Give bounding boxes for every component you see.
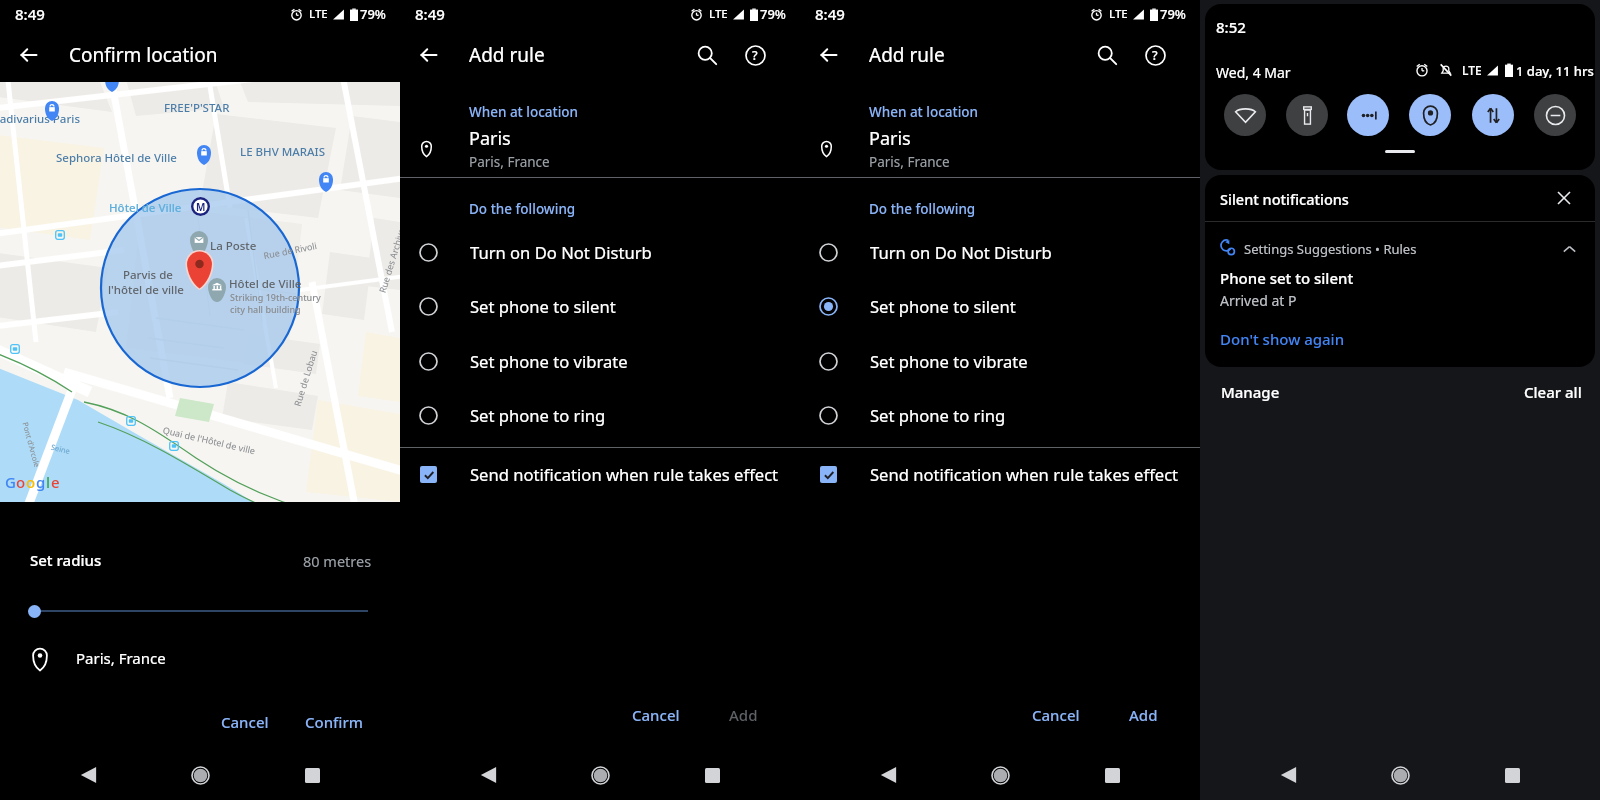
staticText: Confirm location: [69, 42, 218, 68]
staticText: Add rule: [869, 42, 945, 68]
staticText: ?: [1152, 47, 1158, 64]
button[interactable]: Recents: [290, 753, 334, 797]
button[interactable]: Search: [684, 32, 730, 78]
button[interactable]: Set phone to vibrate: [400, 334, 800, 388]
staticText: Pont d'Arcole: [21, 421, 42, 469]
button[interactable]: Cancel: [1022, 698, 1090, 732]
staticText: Clear all: [1524, 382, 1582, 402]
staticText: o: [16, 472, 26, 492]
button[interactable]: Back: [66, 753, 110, 797]
button[interactable]: Clear all: [1520, 379, 1586, 405]
button[interactable]: Mobile data: [1472, 94, 1514, 136]
button[interactable]: Set phone to silent: [800, 279, 1200, 333]
button[interactable]: Back: [866, 753, 910, 797]
button[interactable]: Back: [806, 32, 852, 78]
staticText: 8:52: [1216, 17, 1246, 37]
staticText: When at location: [869, 103, 979, 121]
staticText: Manage: [1221, 382, 1280, 402]
staticText: Add: [729, 705, 758, 725]
button[interactable]: Location: [1409, 94, 1451, 136]
button[interactable]: Do Not Disturb: [1534, 94, 1576, 136]
button[interactable]: Cancel: [211, 705, 279, 739]
button[interactable]: Send notification when rule takes effect: [400, 448, 800, 500]
staticText: Add rule: [469, 42, 545, 68]
staticText: Add: [1129, 705, 1158, 725]
button[interactable]: Add: [1119, 698, 1168, 732]
button[interactable]: Recents: [690, 753, 734, 797]
staticText: o: [26, 472, 36, 492]
button[interactable]: Do Not Disturb options: [1347, 94, 1389, 136]
button[interactable]: Help: [1132, 32, 1178, 78]
button[interactable]: Help: [732, 32, 778, 78]
staticText: Silent notifications: [1220, 189, 1349, 209]
staticText: Phone set to silent: [1220, 268, 1354, 288]
staticText: radivarius Paris: [0, 111, 80, 127]
staticText: Paris: [469, 126, 511, 151]
staticText: 79%: [1160, 5, 1186, 23]
button[interactable]: Set phone to silent: [400, 279, 800, 333]
staticText: l: [46, 472, 51, 492]
button[interactable]: Set phone to ring: [400, 388, 800, 442]
staticText: Wed, 4 Mar: [1216, 63, 1291, 82]
staticText: Parvis de: [123, 267, 173, 283]
staticText: Turn on Do Not Disturb: [870, 241, 1052, 264]
button[interactable]: Don't show again: [1216, 326, 1349, 352]
staticText: 79%: [760, 5, 786, 23]
button[interactable]: Add: [719, 698, 768, 732]
button[interactable]: Set phone to ring: [800, 388, 1200, 442]
staticText: Cancel: [221, 712, 269, 732]
button[interactable]: Wi-Fi: [1224, 94, 1266, 136]
button[interactable]: Home: [1378, 753, 1422, 797]
staticText: g: [36, 472, 46, 492]
button[interactable]: Turn on Do Not Disturb: [400, 225, 800, 279]
button[interactable]: Home: [578, 753, 622, 797]
staticText: M: [196, 200, 206, 214]
staticText: Turn on Do Not Disturb: [470, 241, 652, 264]
button[interactable]: Cancel: [622, 698, 690, 732]
button[interactable]: Turn on Do Not Disturb: [800, 225, 1200, 279]
staticText: Paris: [869, 126, 911, 151]
button[interactable]: Recents: [1090, 753, 1134, 797]
staticText: Paris, France: [469, 153, 550, 171]
button[interactable]: Manage: [1217, 379, 1284, 405]
staticText: Settings Suggestions • Rules: [1244, 240, 1417, 258]
staticText: G: [5, 472, 16, 492]
button[interactable]: [1205, 222, 1595, 367]
staticText: Set phone to vibrate: [470, 350, 628, 373]
staticText: 8:49: [415, 4, 445, 24]
button[interactable]: Collapse: [1556, 236, 1582, 262]
staticText: Hôtel de Ville: [229, 276, 302, 292]
staticText: Paris, France: [76, 648, 166, 668]
button[interactable]: Back: [406, 32, 452, 78]
staticText: Rue de Rivoli: [262, 239, 319, 261]
staticText: Set phone to silent: [870, 295, 1016, 318]
button[interactable]: Back: [466, 753, 510, 797]
staticText: Set phone to ring: [470, 404, 606, 427]
staticText: ?: [752, 47, 758, 64]
staticText: La Poste: [210, 238, 257, 254]
staticText: Cancel: [632, 705, 680, 725]
button[interactable]: Back: [1266, 753, 1310, 797]
button[interactable]: Home: [178, 753, 222, 797]
button[interactable]: Home: [978, 753, 1022, 797]
staticText: l'hôtel de ville: [108, 282, 184, 298]
staticText: Hôtel de Ville: [109, 200, 182, 216]
button[interactable]: Back: [6, 32, 52, 78]
staticText: Striking 19th-century: [230, 291, 321, 303]
button[interactable]: Flashlight: [1286, 94, 1328, 136]
staticText: 1 day, 11 hrs: [1516, 62, 1594, 78]
staticText: Seine: [50, 442, 72, 456]
button[interactable]: Set phone to vibrate: [800, 334, 1200, 388]
button[interactable]: Confirm: [295, 705, 374, 739]
staticText: LTE: [1109, 6, 1128, 22]
button[interactable]: Close: [1550, 184, 1578, 212]
staticText: Arrived at P: [1220, 291, 1297, 310]
button[interactable]: Recents: [1490, 753, 1534, 797]
button[interactable]: Send notification when rule takes effect: [800, 448, 1200, 500]
button[interactable]: Search: [1084, 32, 1130, 78]
staticText: 80 metres: [303, 551, 372, 571]
staticText: Rue des Archives: [376, 222, 400, 294]
staticText: 79%: [360, 5, 386, 23]
staticText: Confirm: [305, 712, 364, 732]
staticText: city hall building: [230, 303, 301, 315]
